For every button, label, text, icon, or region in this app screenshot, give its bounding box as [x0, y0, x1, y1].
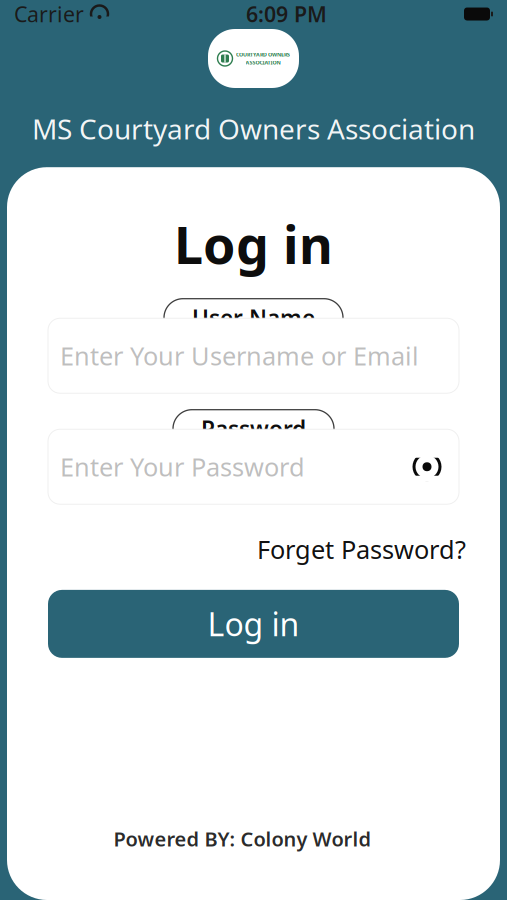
staticText: Forget Password?	[257, 532, 466, 566]
staticText: COURTYARD OWNERS	[236, 51, 290, 58]
staticText: Enter Your Username or Email	[60, 339, 419, 372]
staticText: 6:09 PM	[246, 0, 327, 28]
button[interactable]: Log in	[48, 590, 459, 658]
staticText: Carrier	[14, 0, 84, 28]
staticText: User Name	[192, 303, 315, 333]
staticText: Password	[201, 414, 306, 444]
staticText: Powered BY: Colony World	[113, 825, 371, 852]
staticText: ASSOCIATION	[245, 59, 280, 66]
button[interactable]: Forget Password?	[257, 526, 466, 572]
button[interactable]: Show password	[407, 450, 447, 484]
staticText: Enter Your Password	[60, 450, 305, 483]
staticText: MS Courtyard Owners Association	[32, 110, 475, 147]
staticText: Log in	[207, 603, 299, 645]
staticText: Log in	[174, 209, 333, 278]
